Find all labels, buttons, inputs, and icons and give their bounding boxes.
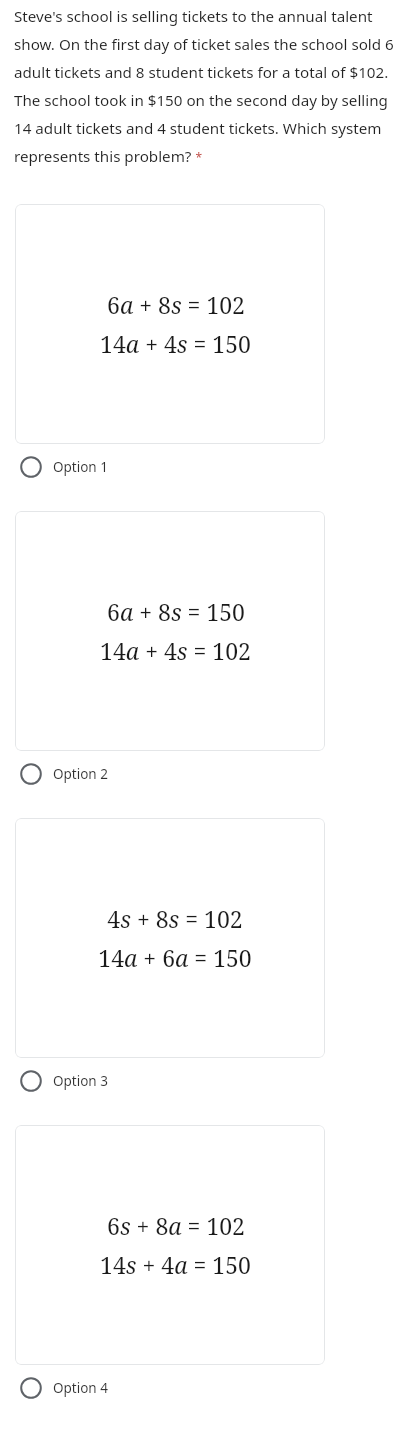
button[interactable]: Option 2 <box>0 755 404 793</box>
staticText: 14a + 4s = 102 <box>100 635 251 666</box>
staticText: 6a + 8s = 150 <box>107 596 245 627</box>
button[interactable]: 6a + 8s = 150 <box>15 511 325 751</box>
other: Option 4 <box>20 1377 42 1399</box>
staticText: Option 3 <box>53 1072 108 1090</box>
staticText: 14s + 4a = 150 <box>100 1249 251 1280</box>
other: Option 3 <box>20 1070 42 1092</box>
button[interactable]: 6a + 8s = 102 <box>15 204 325 444</box>
staticText: 14a + 6a = 150 <box>98 942 252 973</box>
staticText: Option 2 <box>53 765 108 783</box>
staticText: Option 4 <box>53 1379 108 1397</box>
other: Option 2 <box>20 763 42 785</box>
button[interactable]: 4s + 8s = 102 <box>15 818 325 1058</box>
staticText: 14a + 4s = 150 <box>100 328 251 359</box>
button[interactable]: Option 4 <box>0 1369 404 1407</box>
button[interactable]: 6s + 8a = 102 <box>15 1125 325 1365</box>
staticText: Steve's school is selling tickets to the… <box>14 6 394 166</box>
staticText: Option 1 <box>53 458 108 476</box>
button[interactable]: Option 3 <box>0 1062 404 1100</box>
staticText: 6s + 8a = 102 <box>107 1210 245 1241</box>
staticText: 4s + 8s = 102 <box>107 903 243 934</box>
staticText: 6a + 8s = 102 <box>107 289 245 320</box>
button[interactable]: Option 1 <box>0 448 404 486</box>
other: Option 1 <box>20 456 42 478</box>
